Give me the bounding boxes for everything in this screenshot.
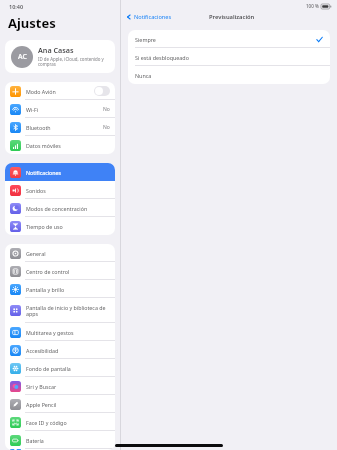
staticText: Nunca — [135, 72, 152, 79]
button[interactable]: Notificaciones — [126, 13, 172, 21]
staticText: 100 % — [306, 3, 319, 9]
staticText: Datos móviles — [26, 142, 61, 149]
button[interactable]: Centro de control — [5, 262, 115, 280]
staticText: Bluetooth — [26, 124, 51, 131]
button[interactable]: Modos de concentración — [5, 199, 115, 217]
button[interactable]: Siempre — [128, 30, 330, 48]
staticText: Accesibilidad — [26, 347, 59, 354]
staticText: Batería — [26, 437, 44, 444]
staticText: Apple Pencil — [26, 401, 57, 408]
button[interactable]: Bluetooth — [5, 118, 115, 136]
button[interactable]: Pantalla y brillo — [5, 280, 115, 298]
button[interactable]: AC — [5, 40, 115, 73]
staticText: Previsualización — [209, 13, 255, 21]
button[interactable]: Tiempo de uso — [5, 217, 115, 235]
staticText: Si está desbloqueado — [135, 54, 189, 61]
staticText: Wi-Fi — [26, 106, 39, 113]
staticText: Fondo de pantalla — [26, 365, 71, 372]
button[interactable]: Pantalla de inicio y biblioteca de apps — [5, 298, 115, 323]
button[interactable]: General — [5, 244, 115, 262]
staticText: Tiempo de uso — [26, 223, 63, 230]
staticText: Modo Avión — [26, 88, 56, 95]
staticText: Multitarea y gestos — [26, 329, 74, 336]
staticText: Face ID y código — [26, 419, 67, 426]
staticText: Notificaciones — [26, 169, 62, 176]
staticText: Sonidos — [26, 187, 46, 194]
staticText: Siempre — [135, 36, 156, 43]
staticText: Notificaciones — [134, 13, 172, 21]
button[interactable]: Fondo de pantalla — [5, 359, 115, 377]
staticText: Ana Casas — [38, 45, 74, 55]
staticText: Ajustes — [8, 14, 56, 32]
staticText: No — [103, 124, 110, 131]
button[interactable]: Face ID y código — [5, 413, 115, 431]
button[interactable]: Sonidos — [5, 181, 115, 199]
button[interactable]: Datos móviles — [5, 136, 115, 154]
staticText: General — [26, 250, 46, 257]
button[interactable]: Accesibilidad — [5, 341, 115, 359]
staticText: ID de Apple, iCloud, contenido y compras — [38, 56, 109, 68]
staticText: Siri y Buscar — [26, 383, 57, 390]
button[interactable]: Modo Avión — [5, 82, 115, 100]
staticText: 10:40 — [9, 3, 24, 10]
button[interactable]: Apple Pencil — [5, 395, 115, 413]
button[interactable]: Si está desbloqueado — [128, 48, 330, 66]
button[interactable]: Batería — [5, 431, 115, 449]
button[interactable]: Multitarea y gestos — [5, 323, 115, 341]
staticText: Centro de control — [26, 268, 70, 275]
button[interactable]: Privacidad y seguridad — [5, 449, 115, 450]
staticText: Pantalla de inicio y biblioteca de apps — [26, 304, 110, 318]
button[interactable]: Notificaciones — [5, 163, 115, 181]
staticText: No — [103, 106, 110, 113]
button[interactable]: Siri y Buscar — [5, 377, 115, 395]
button[interactable]: Nunca — [128, 66, 330, 84]
staticText: Pantalla y brillo — [26, 286, 65, 293]
staticText: AC — [18, 52, 27, 62]
button[interactable]: Wi-Fi — [5, 100, 115, 118]
staticText: Modos de concentración — [26, 205, 88, 212]
